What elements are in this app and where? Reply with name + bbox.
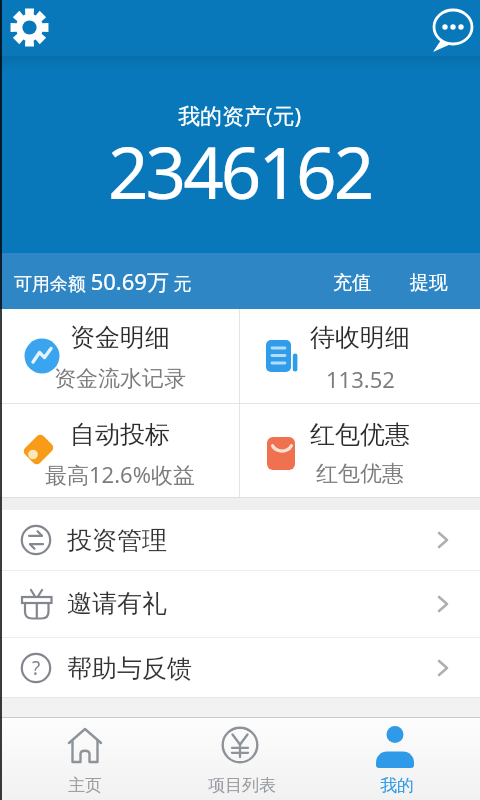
staticText: ? — [32, 655, 41, 681]
staticText: 最高12.6%收益 — [45, 459, 195, 488]
staticText: 主页 — [68, 775, 102, 795]
button[interactable] — [0, 571, 480, 637]
button[interactable]: 充值 — [322, 255, 382, 311]
staticText: 我的资产(元) — [178, 100, 302, 128]
staticText: 自动投标 — [70, 419, 170, 450]
button[interactable]: 提现 — [399, 255, 459, 311]
staticText: 帮助与反馈 — [67, 653, 192, 684]
button[interactable] — [25, 718, 145, 800]
staticText: 资金流水记录 — [54, 365, 186, 393]
button[interactable] — [239, 309, 480, 403]
staticText: 资金明细 — [70, 322, 170, 353]
staticText: 113.52 — [326, 364, 395, 393]
staticText: 项目列表 — [208, 775, 276, 795]
button[interactable] — [0, 638, 480, 697]
staticText: 投资管理 — [67, 525, 167, 556]
button[interactable] — [335, 718, 455, 800]
staticText: 可用余额 50.69万 元 — [14, 266, 192, 296]
staticText: 红包优惠 — [310, 419, 410, 450]
button[interactable] — [0, 403, 239, 497]
button[interactable] — [0, 510, 480, 570]
button[interactable] — [10, 8, 49, 47]
button[interactable] — [0, 309, 239, 403]
staticText: 2346162 — [108, 123, 372, 207]
staticText: 我的 — [380, 775, 414, 795]
button[interactable] — [431, 7, 475, 53]
staticText: 提现 — [410, 271, 448, 295]
staticText: 邀请有礼 — [67, 588, 167, 619]
staticText: 待收明细 — [310, 322, 410, 353]
staticText: 红包优惠 — [316, 460, 404, 488]
button[interactable] — [239, 403, 480, 497]
staticText: 充值 — [333, 271, 371, 295]
button[interactable] — [180, 718, 300, 800]
